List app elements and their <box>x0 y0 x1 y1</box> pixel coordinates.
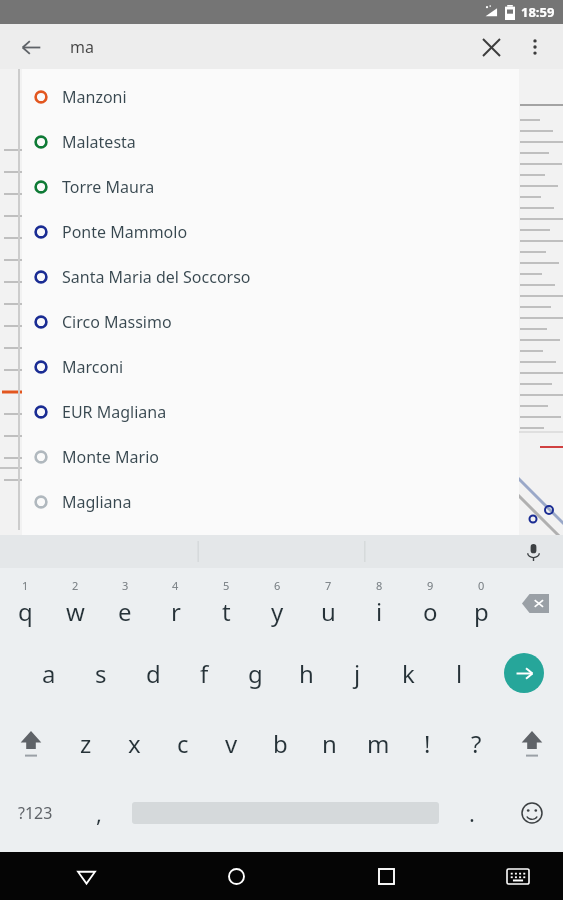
button[interactable]: Clear <box>473 29 509 65</box>
staticText: e <box>118 595 132 628</box>
staticText: f <box>200 657 209 690</box>
button[interactable]: f <box>179 638 230 708</box>
button[interactable]: j <box>332 638 383 708</box>
button[interactable]: h <box>281 638 332 708</box>
staticText: 3 <box>122 578 129 593</box>
button[interactable]: 3 <box>100 568 150 638</box>
button[interactable]: Back <box>14 30 48 64</box>
button[interactable]: Recents <box>363 853 409 899</box>
staticText: 6 <box>274 578 281 593</box>
button[interactable]: Backspace <box>507 568 563 638</box>
staticText: Monte Mario <box>62 446 159 468</box>
staticText: 8 <box>376 578 383 593</box>
button[interactable]: Switch keyboard <box>496 854 540 898</box>
button[interactable]: m <box>354 708 403 778</box>
button[interactable]: Malatesta <box>22 119 519 164</box>
button[interactable]: Marconi <box>22 344 519 389</box>
staticText: u <box>321 595 336 628</box>
button[interactable]: ? <box>452 708 501 778</box>
staticText: ma <box>70 36 94 58</box>
staticText: 4 <box>172 578 179 593</box>
staticText: y <box>271 595 284 628</box>
button[interactable]: Santa Maria del Soccorso <box>22 254 519 299</box>
button[interactable]: Monte Mario <box>22 434 519 479</box>
button[interactable]: a <box>23 638 75 708</box>
button[interactable]: Ponte Mammolo <box>22 209 519 254</box>
button[interactable]: l <box>434 638 485 708</box>
button[interactable]: 6 <box>252 568 303 638</box>
staticText: 1 <box>22 578 29 593</box>
staticText: n <box>322 727 337 760</box>
button[interactable]: ?123 <box>0 778 70 848</box>
button[interactable]: Back <box>63 853 109 899</box>
staticText: w <box>66 595 85 628</box>
button[interactable]: , <box>70 778 128 848</box>
staticText: d <box>146 657 161 690</box>
button[interactable]: b <box>256 708 305 778</box>
button[interactable]: z <box>62 708 110 778</box>
button[interactable]: 4 <box>150 568 201 638</box>
staticText: . <box>469 798 475 828</box>
staticText: Santa Maria del Soccorso <box>62 266 251 288</box>
staticText: m <box>367 727 390 760</box>
button[interactable]: d <box>127 638 179 708</box>
staticText: l <box>456 657 463 690</box>
button[interactable]: 5 <box>201 568 252 638</box>
button[interactable]: k <box>383 638 434 708</box>
staticText: Ponte Mammolo <box>62 221 188 243</box>
button[interactable]: 7 <box>303 568 354 638</box>
button[interactable]: n <box>305 708 354 778</box>
staticText: 9 <box>427 578 434 593</box>
staticText: q <box>18 595 33 628</box>
button[interactable]: Shift <box>501 708 563 778</box>
button[interactable]: Magliana <box>22 479 519 524</box>
button[interactable]: EUR Magliana <box>22 389 519 434</box>
staticText: b <box>273 727 288 760</box>
button[interactable]: x <box>110 708 158 778</box>
staticText: ?123 <box>18 802 53 824</box>
staticText: 5 <box>223 578 230 593</box>
staticText: EUR Magliana <box>62 401 167 423</box>
staticText: Torre Maura <box>62 176 155 198</box>
button[interactable]: 2 <box>50 568 100 638</box>
button[interactable]: v <box>207 708 256 778</box>
button[interactable]: 8 <box>354 568 405 638</box>
staticText: c <box>177 727 189 760</box>
button[interactable]: . <box>443 778 501 848</box>
staticText: p <box>474 595 489 628</box>
button[interactable]: Circo Massimo <box>22 299 519 344</box>
button[interactable]: Manzoni <box>22 74 519 119</box>
staticText: r <box>171 595 181 628</box>
button[interactable]: 0 <box>456 568 507 638</box>
staticText: Circo Massimo <box>62 311 172 333</box>
staticText: g <box>248 657 263 690</box>
staticText: v <box>225 727 238 760</box>
button[interactable]: g <box>230 638 281 708</box>
staticText: i <box>376 595 383 628</box>
staticText: Malatesta <box>62 131 136 153</box>
button[interactable]: 1 <box>0 568 50 638</box>
staticText: Marconi <box>62 356 124 378</box>
button[interactable]: Emoji <box>501 778 563 848</box>
button[interactable]: Torre Maura <box>22 164 519 209</box>
button[interactable]: Enter <box>485 638 563 708</box>
button[interactable]: c <box>158 708 207 778</box>
button[interactable]: More options <box>517 29 553 65</box>
staticText: 18:59 <box>521 3 555 21</box>
staticText: , <box>96 798 102 828</box>
staticText: 0 <box>478 578 485 593</box>
staticText: 2 <box>72 578 79 593</box>
staticText: Manzoni <box>62 86 127 108</box>
staticText: Magliana <box>62 491 132 513</box>
button[interactable]: Shift <box>0 708 62 778</box>
button[interactable]: s <box>75 638 127 708</box>
button[interactable]: Home <box>213 853 259 899</box>
button[interactable]: ! <box>403 708 452 778</box>
button[interactable]: Voice input <box>519 538 547 566</box>
staticText: s <box>95 657 107 690</box>
staticText: 7 <box>325 578 332 593</box>
staticText: h <box>299 657 314 690</box>
button[interactable]: 9 <box>405 568 456 638</box>
staticText: o <box>423 595 438 628</box>
